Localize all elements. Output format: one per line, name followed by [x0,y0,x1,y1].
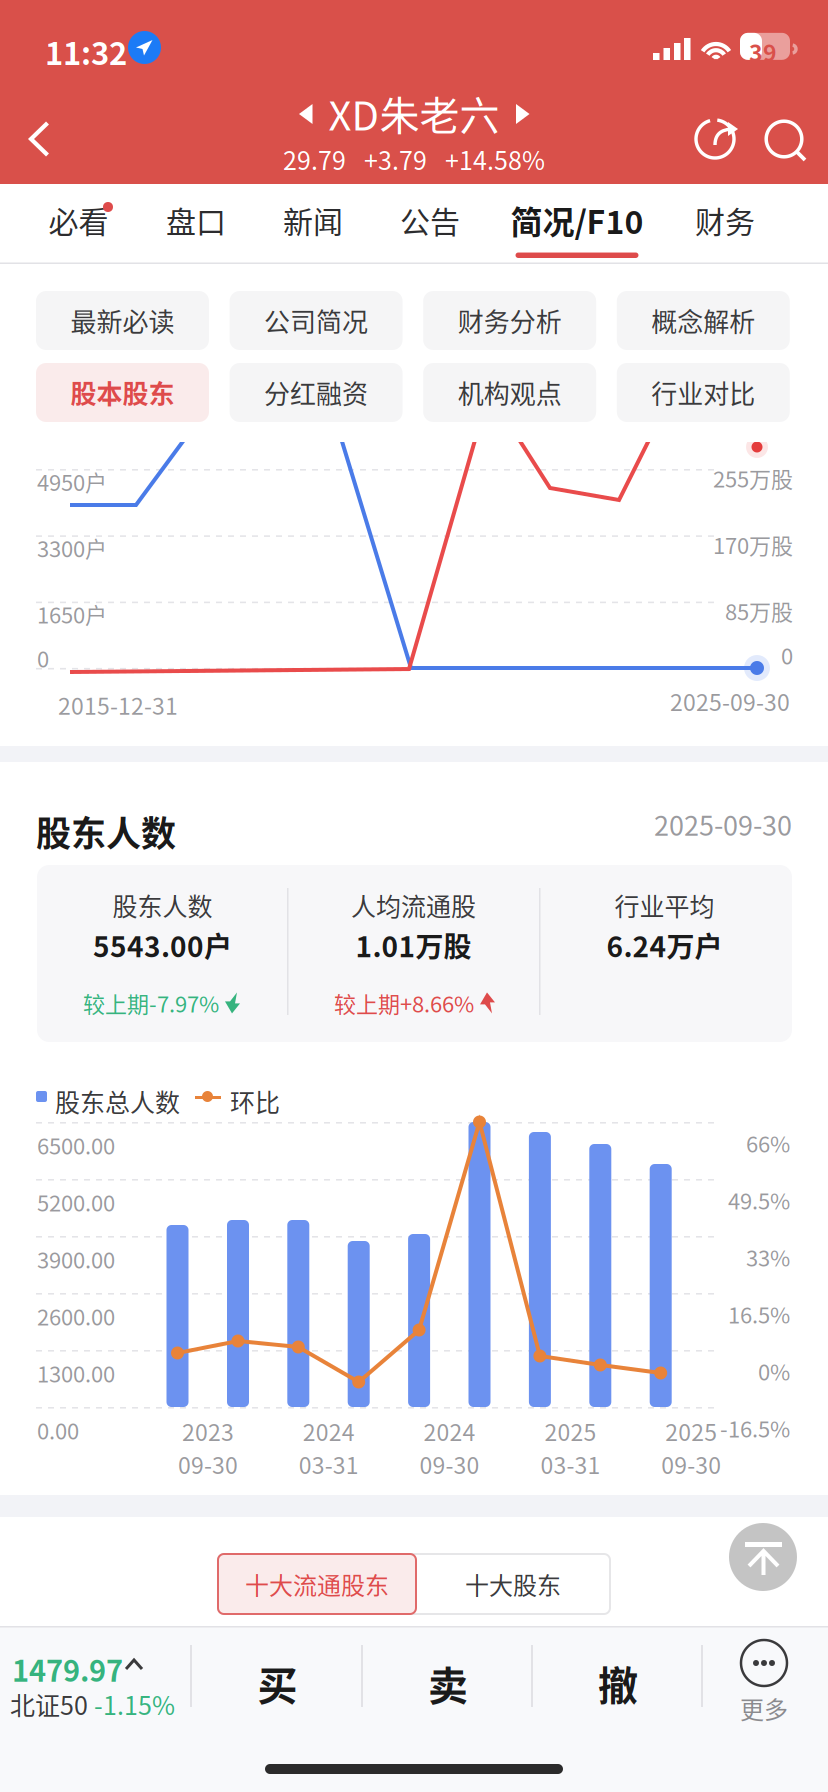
button[interactable]: 行业对比 [617,363,790,422]
staticText: 财务分析 [458,302,562,339]
button[interactable]: 新闻 [258,184,368,264]
staticText: 行业对比 [651,374,755,411]
staticText: 公告 [400,198,460,242]
staticText: 股东人数 [112,887,212,923]
staticText: 29.79 +3.79 +14.58% [283,141,545,177]
button[interactable]: 简况/F10 [497,184,657,264]
staticText: 85万股 [725,595,793,627]
button[interactable]: 1479.97 [0,1626,190,1740]
button[interactable]: 买 [192,1626,363,1740]
staticText: 3300户 [37,532,107,564]
button[interactable]: 财务分析 [423,291,596,350]
staticText: 较上期-7.97% [83,987,219,1019]
staticText: 概念解析 [651,302,755,339]
staticText: 十大流通股东 [245,1567,389,1601]
staticText: 撤 [598,1654,638,1712]
staticText: 2023 [182,1414,234,1448]
button[interactable]: Refresh [680,104,750,174]
staticText: 2024 [303,1414,355,1448]
staticText: 较上期+8.66% [334,987,474,1019]
staticText: 255万股 [713,462,793,494]
staticText: 0% [758,1355,790,1387]
staticText: 4950户 [37,465,107,497]
button[interactable]: 撤 [533,1626,703,1740]
staticText: 2025-09-30 [654,804,792,844]
staticText: 北证50 [10,1686,88,1722]
staticText: 3900.00 [37,1243,115,1275]
button[interactable]: Scroll to top [729,1523,797,1591]
staticText: XD朱老六 [328,84,499,142]
staticText: -16.5% [720,1412,790,1444]
staticText: 0 [781,639,793,671]
button[interactable]: 概念解析 [617,291,790,350]
staticText: 170万股 [713,528,793,560]
button[interactable]: Back [0,102,76,178]
staticText: 股本股东 [70,374,174,411]
staticText: 卖 [428,1654,468,1712]
staticText: 1.01万股 [355,925,471,965]
staticText: 03-31 [540,1447,600,1481]
button[interactable]: 必看 [23,184,133,264]
staticText: 必看 [48,198,108,242]
staticText: 财务 [695,198,755,242]
staticText: 盘口 [166,198,226,242]
staticText: 机构观点 [458,374,562,411]
staticText: -1.15% [94,1686,175,1722]
staticText: 股东人数 [36,806,176,857]
staticText: 33% [746,1241,790,1273]
staticText: 09-30 [420,1447,480,1481]
button[interactable]: 财务 [670,184,780,264]
staticText: 人均流通股 [351,887,476,923]
staticText: 买 [257,1654,297,1712]
staticText: 十大股东 [465,1567,561,1601]
staticText: 1479.97 [12,1648,123,1690]
staticText: 新闻 [283,198,343,242]
staticText: 最新必读 [70,302,174,339]
button[interactable]: 卖 [363,1626,533,1740]
staticText: 5543.00户 [93,925,232,965]
staticText: 2600.00 [37,1300,115,1332]
staticText: 公司简况 [264,302,368,339]
button[interactable]: 盘口 [141,184,251,264]
staticText: 股东总人数 [55,1083,180,1119]
staticText: 环比 [230,1083,280,1119]
staticText: 39 [749,35,777,68]
button[interactable]: 公司简况 [230,291,403,350]
staticText: 简况/F10 [510,197,643,243]
button[interactable]: 最新必读 [36,291,209,350]
staticText: 0.00 [37,1414,79,1446]
staticText: 行业平均 [614,887,714,923]
staticText: 2024 [424,1414,476,1448]
staticText: 11:32 [45,29,127,74]
staticText: 2015-12-31 [58,688,178,721]
staticText: 1300.00 [37,1357,115,1389]
staticText: 2025 [665,1414,717,1448]
staticText: 1650户 [37,598,107,630]
staticText: 6.24万户 [606,925,722,965]
staticText: 66% [746,1127,790,1159]
staticText: 更多 [740,1691,788,1725]
staticText: 0 [37,642,49,674]
staticText: 5200.00 [37,1186,115,1218]
staticText: 16.5% [728,1298,790,1330]
staticText: 2025-09-30 [670,684,790,718]
button[interactable]: 更多 [703,1626,825,1740]
staticText: 分红融资 [264,374,368,411]
staticText: 09-30 [178,1447,238,1481]
button[interactable]: 十大股东 [416,1554,610,1614]
button[interactable]: 机构观点 [423,363,596,422]
staticText: 09-30 [661,1447,721,1481]
staticText: 49.5% [728,1184,790,1216]
staticText: 6500.00 [37,1129,115,1161]
staticText: 2025 [544,1414,596,1448]
button[interactable]: 分红融资 [230,363,403,422]
button[interactable]: 十大流通股东 [218,1554,416,1614]
button[interactable]: 股本股东 [36,363,209,422]
button[interactable]: Search [749,104,819,174]
staticText: 03-31 [299,1447,359,1481]
button[interactable]: 公告 [375,184,485,264]
